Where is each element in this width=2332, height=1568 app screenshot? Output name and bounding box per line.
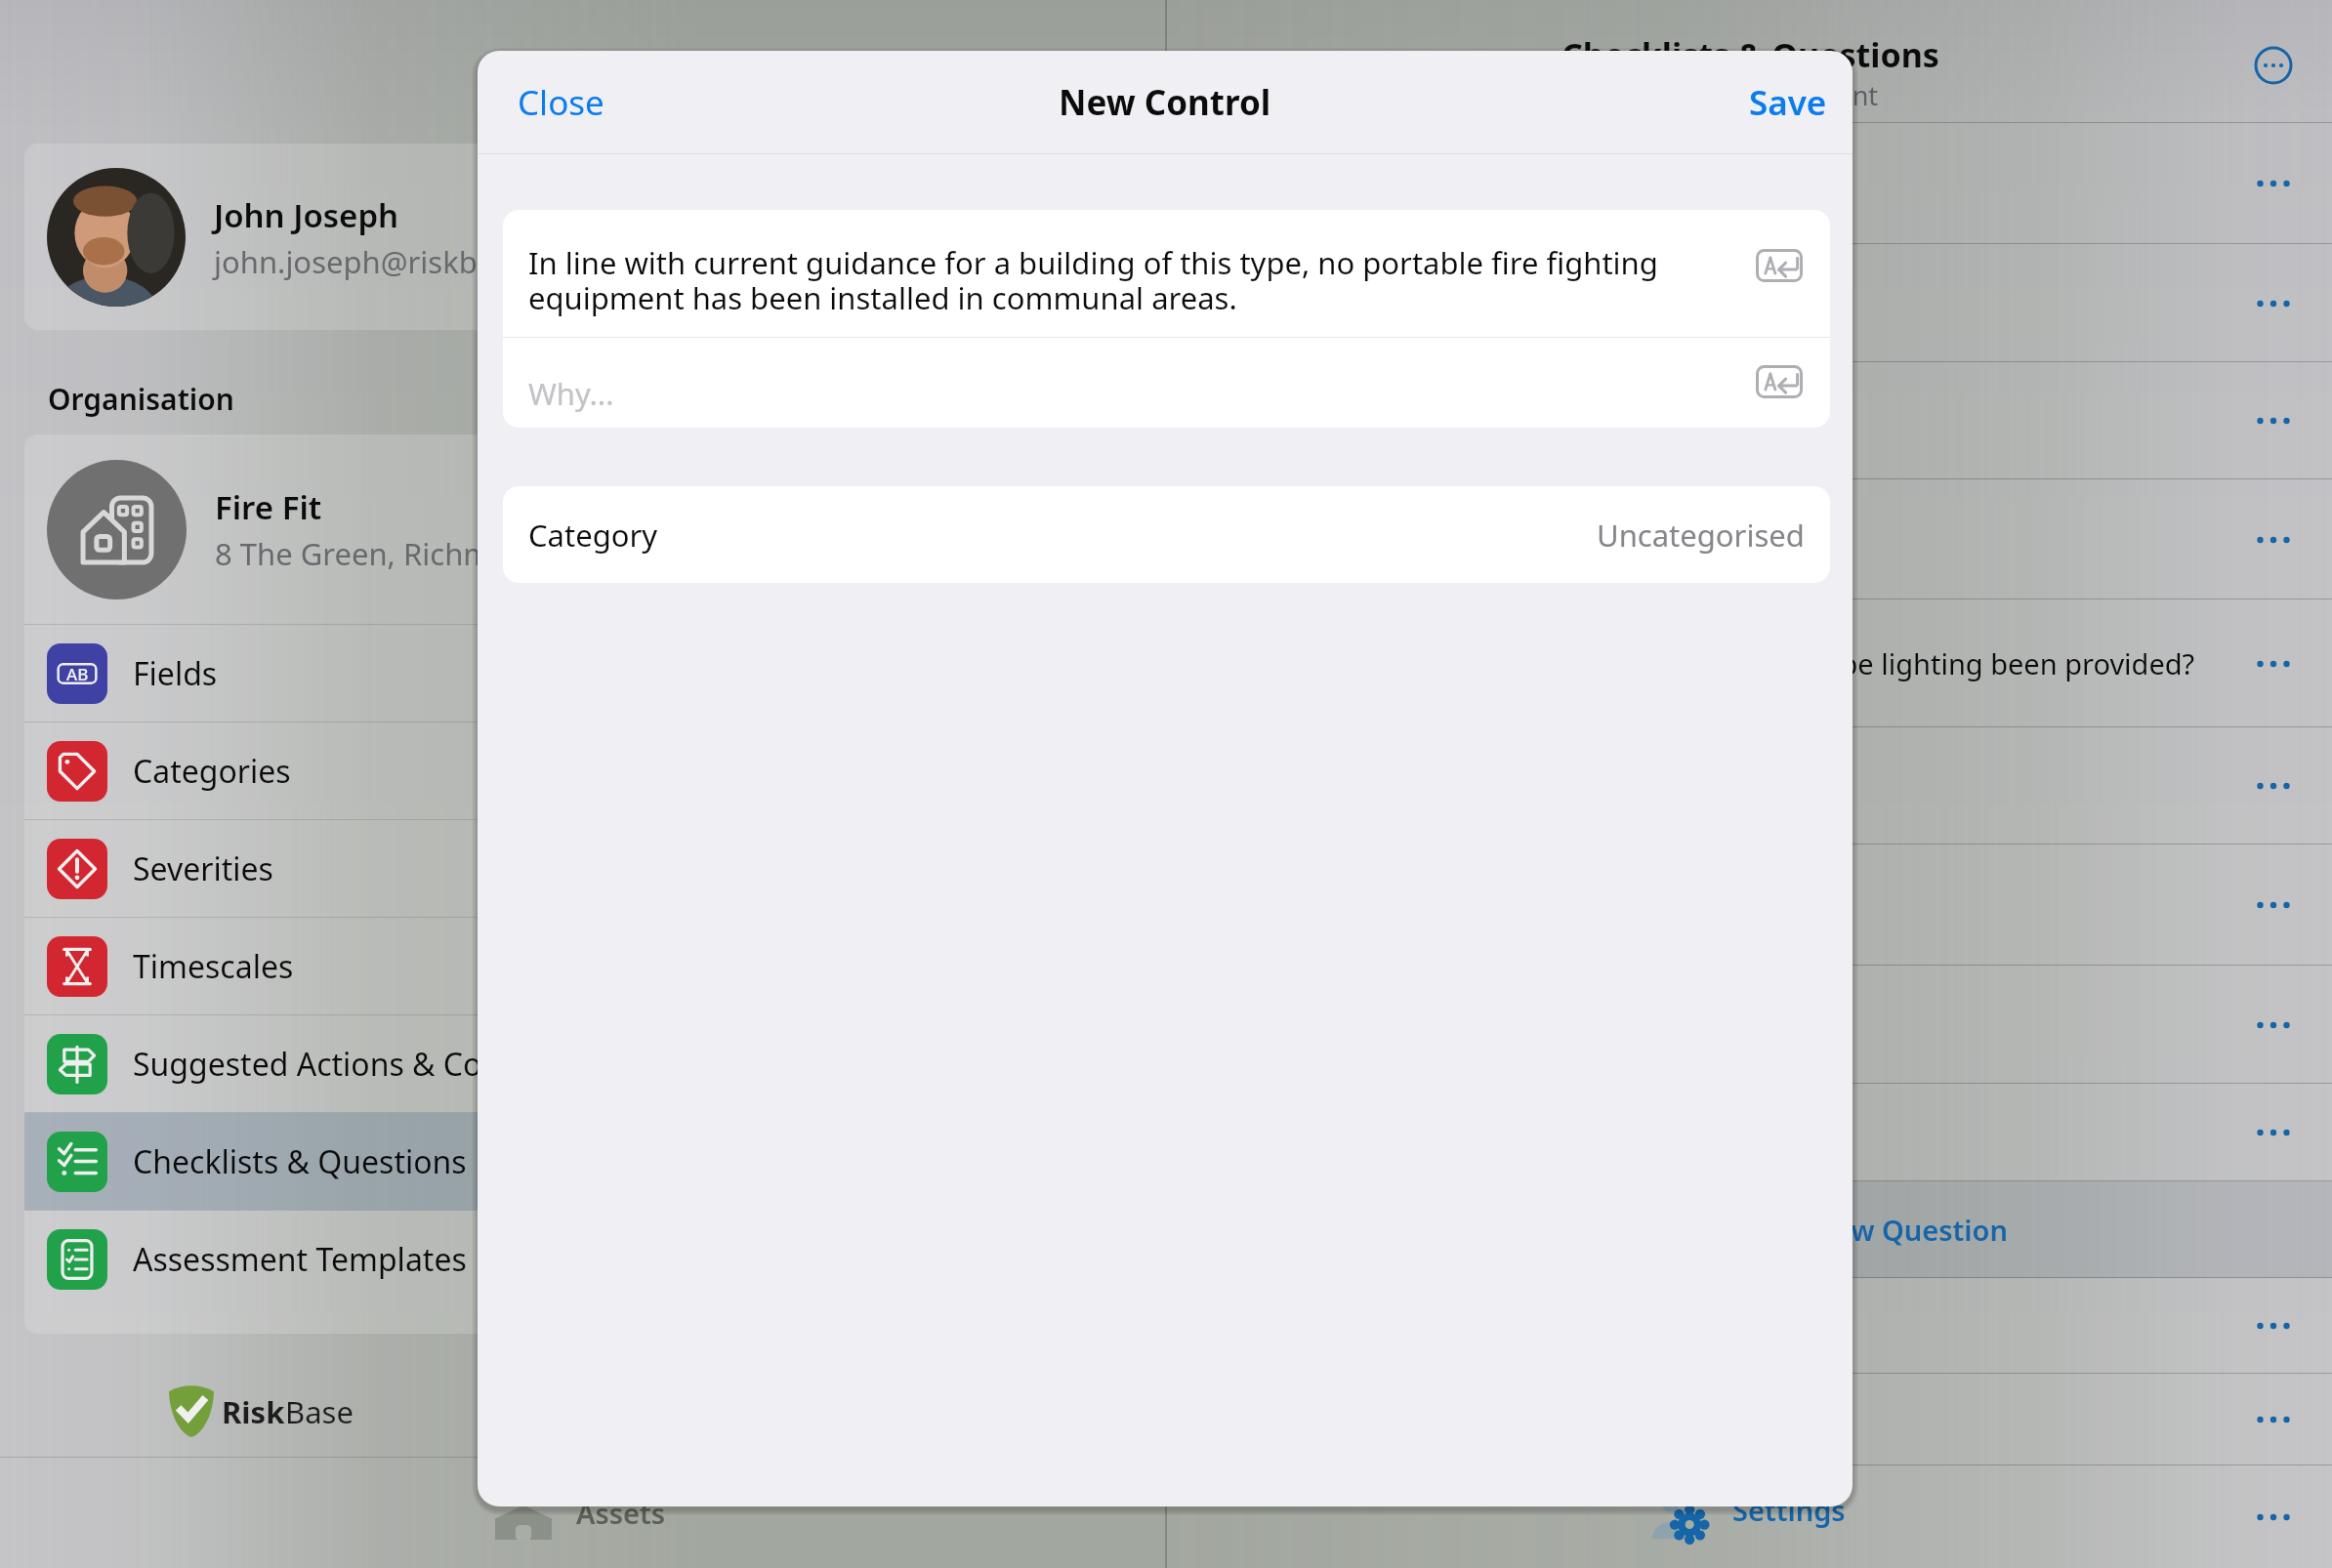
staticText: Fire Fit — [215, 485, 322, 529]
button[interactable]: Row menu — [2241, 754, 2306, 818]
button[interactable]: Row menu — [1167, 123, 2332, 244]
button[interactable]: More options — [2242, 34, 2305, 97]
staticText: Assets — [576, 1494, 666, 1532]
button[interactable]: Checklists & Questions — [24, 1113, 1040, 1210]
button[interactable]: Row menu — [1167, 244, 2332, 362]
button[interactable]: Row menu — [1167, 1465, 2332, 1568]
staticText: Uncategorised — [1597, 515, 1805, 556]
staticText: 8 The Green, Richmond — [215, 533, 548, 574]
staticText: AB — [66, 663, 89, 685]
staticText: Fields — [133, 652, 218, 695]
button[interactable]: Row menu — [1167, 362, 2332, 479]
button[interactable]: Categories — [24, 722, 1040, 819]
button[interactable]: Row menu — [2241, 389, 2306, 453]
button[interactable]: Row menu — [1167, 1374, 2332, 1465]
button[interactable]: Close — [518, 51, 604, 154]
button[interactable]: New Question — [1167, 1181, 2332, 1278]
button[interactable]: Category — [503, 486, 1830, 583]
button[interactable]: Row menu — [2241, 1485, 2306, 1549]
button[interactable]: Severities — [24, 820, 1040, 917]
staticText: Checklists & Questions — [1562, 32, 1939, 77]
staticText: Close — [518, 79, 604, 126]
staticText: Risk — [222, 1391, 285, 1432]
button[interactable]: Row menu — [2241, 1294, 2306, 1358]
button[interactable]: Timescales — [24, 918, 1040, 1014]
button[interactable]: Assets — [483, 1465, 669, 1568]
button[interactable]: Row menu — [1167, 1084, 2332, 1181]
staticText: New Question — [1812, 1211, 2008, 1249]
button[interactable]: Row menu — [2241, 1100, 2306, 1165]
button[interactable]: Row menu — [2241, 151, 2306, 216]
staticText: Suggested Actions & Controls — [133, 1043, 567, 1086]
staticText: Organisation — [48, 379, 234, 419]
button[interactable]: Row menu — [2241, 271, 2306, 336]
button[interactable]: Has adequate escape lighting been provid… — [1167, 599, 2332, 727]
staticText: In line with current guidance for a buil… — [528, 242, 1681, 318]
staticText: Save — [1749, 79, 1827, 126]
button[interactable]: Row menu — [1167, 727, 2332, 845]
button[interactable]: John Joseph — [24, 144, 1040, 330]
button[interactable]: Row menu — [2241, 632, 2306, 696]
staticText: Settings — [1732, 1491, 1846, 1529]
staticText: Why... — [528, 373, 614, 414]
button[interactable]: Save — [1749, 51, 1827, 154]
button[interactable]: Assessment Templates — [24, 1211, 1040, 1307]
staticText: Category — [528, 515, 658, 556]
button[interactable]: Row menu — [2241, 1387, 2306, 1452]
staticText: Timescales — [133, 945, 294, 988]
staticText: Severities — [133, 847, 273, 890]
button[interactable]: Settings — [1637, 1465, 1847, 1568]
button[interactable]: Row menu — [2241, 993, 2306, 1057]
staticText: New Control — [1059, 79, 1271, 126]
button[interactable]: Row menu — [1167, 1278, 2332, 1374]
staticText: john.joseph@riskbase.uk — [214, 241, 569, 282]
button[interactable]: Row menu — [1167, 845, 2332, 966]
staticText: Categories — [133, 750, 291, 793]
button[interactable]: Row menu — [2241, 508, 2306, 572]
button[interactable]: Row menu — [1167, 479, 2332, 599]
button[interactable]: Suggested Actions & Controls — [24, 1015, 1040, 1112]
staticText: Checklists & Questions — [133, 1140, 467, 1183]
button[interactable]: AB — [24, 625, 1040, 722]
staticText: Assessment Templates — [133, 1238, 467, 1281]
staticText: John Joseph — [214, 193, 399, 237]
button[interactable]: Row menu — [2241, 873, 2306, 937]
staticText: Base — [285, 1391, 354, 1432]
button[interactable]: Fire Fit — [24, 434, 1040, 624]
staticText: Fire Risk Assessment — [1621, 77, 1879, 113]
staticText: Has adequate escape lighting been provid… — [1590, 644, 2195, 682]
button[interactable]: Row menu — [1167, 966, 2332, 1084]
